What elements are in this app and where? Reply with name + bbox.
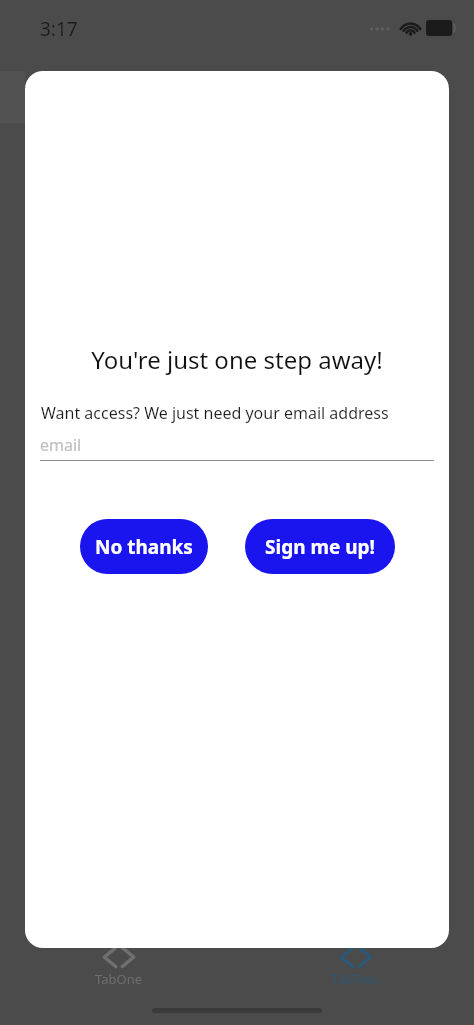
button[interactable]: TabTwo xyxy=(237,942,474,964)
staticText: TabOne xyxy=(95,970,142,988)
button[interactable]: No thanks xyxy=(80,519,208,574)
staticText: TabTwo xyxy=(332,970,379,988)
staticText: Want access? We just need your email add… xyxy=(41,402,389,424)
staticText: Sign me up! xyxy=(265,534,375,560)
button[interactable]: TabOne xyxy=(0,942,237,964)
staticText: email xyxy=(40,434,82,456)
staticText: No thanks xyxy=(95,534,193,560)
staticText: You're just one step away! xyxy=(33,343,441,376)
button[interactable]: Email input field xyxy=(40,432,434,461)
button[interactable]: Sign me up! xyxy=(245,519,395,574)
staticText: 3:17 xyxy=(40,16,78,42)
